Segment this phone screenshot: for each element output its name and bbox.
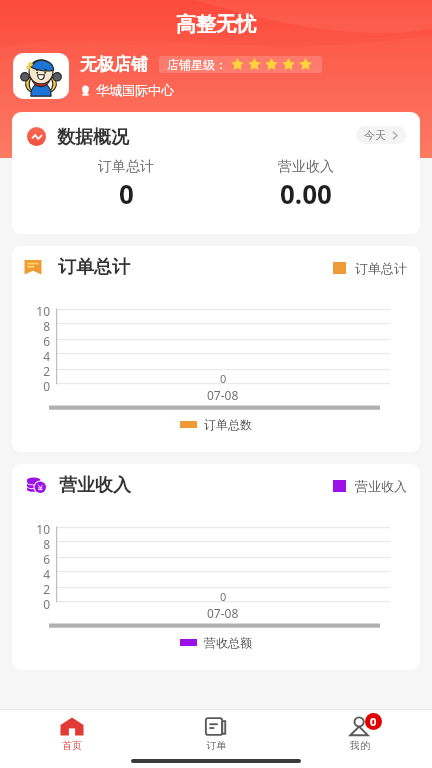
staticText: 10 <box>12 521 50 536</box>
staticText: 营业收入 <box>59 474 131 497</box>
staticText: 营收总额 <box>204 635 252 650</box>
staticText: 10 <box>12 303 50 318</box>
button[interactable]: 首页 <box>0 711 144 752</box>
staticText: 6 <box>12 333 50 348</box>
staticText: 2 <box>12 581 50 596</box>
staticText: 4 <box>12 348 50 363</box>
staticText: 数据概况 <box>57 126 129 149</box>
staticText: 0 <box>12 378 50 393</box>
button[interactable]: 订单 <box>144 711 288 752</box>
staticText: 0 <box>370 714 377 729</box>
staticText: 订单总计 <box>355 260 407 276</box>
staticText: 今天 <box>364 128 386 142</box>
staticText: 4 <box>12 566 50 581</box>
staticText: 0 <box>220 589 227 604</box>
staticText: 2 <box>12 363 50 378</box>
staticText: 8 <box>12 318 50 333</box>
staticText: 07-08 <box>207 387 239 403</box>
staticText: 营业收入 <box>355 478 407 494</box>
staticText: 0 <box>12 596 50 611</box>
staticText: 订单总数 <box>204 417 252 432</box>
staticText: 6 <box>12 551 50 566</box>
button[interactable]: 今天 <box>356 126 406 144</box>
staticText: 0 <box>119 176 134 211</box>
staticText: 07-08 <box>207 605 239 621</box>
staticText: 0.00 <box>280 176 332 211</box>
staticText: 首页 <box>62 739 82 752</box>
staticText: 营业收入 <box>278 158 334 176</box>
staticText: 8 <box>12 536 50 551</box>
staticText: 订单 <box>206 739 226 752</box>
staticText: 华城国际中心 <box>96 82 174 98</box>
staticText: 订单总计 <box>98 158 154 176</box>
staticText: 高整无忧 <box>176 12 256 37</box>
staticText: 0 <box>220 371 227 386</box>
staticText: 店铺星级： <box>167 57 227 72</box>
button[interactable]: 0 <box>288 711 432 752</box>
staticText: 无极店铺 <box>80 54 148 75</box>
staticText: 我的 <box>350 739 370 752</box>
staticText: 订单总计 <box>58 256 130 279</box>
